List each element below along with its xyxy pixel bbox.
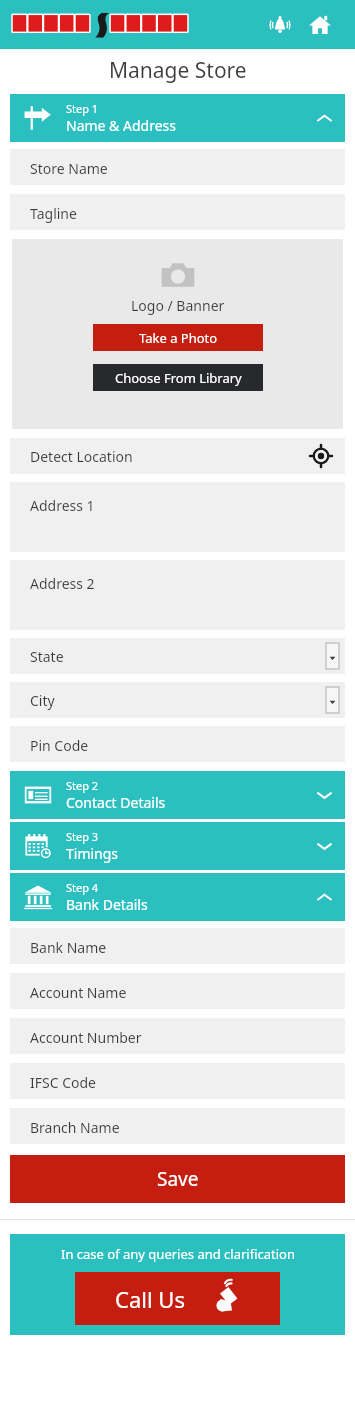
staticText: Tagline (30, 204, 77, 223)
staticText: Step 2 (66, 778, 99, 793)
staticText: Store Name (30, 159, 108, 178)
button[interactable]: Tagline (10, 194, 345, 230)
button[interactable]: Call Us (75, 1272, 280, 1325)
button[interactable]: Detect Location (10, 438, 345, 474)
button[interactable]: Step 4 (10, 873, 345, 921)
staticText: Call Us (115, 1284, 185, 1314)
staticText: Logo / Banner (131, 296, 225, 315)
staticText: State (30, 647, 64, 666)
staticText: Manage Store (109, 56, 247, 85)
staticText: Step 1 (66, 101, 99, 116)
button[interactable]: Step 1 (10, 94, 345, 142)
button[interactable]: Store Name (10, 149, 345, 185)
staticText: In case of any queries and clarification (61, 1245, 295, 1263)
button[interactable]: Take a Photo (93, 324, 263, 351)
button[interactable]: IFSC Code (10, 1063, 345, 1099)
staticText: Take a Photo (139, 329, 218, 347)
button[interactable]: Bank Name (10, 928, 345, 964)
button[interactable]: Choose From Library (93, 364, 263, 391)
button[interactable]: Notifications (263, 8, 297, 42)
staticText: Contact Details (66, 793, 166, 812)
staticText: Step 3 (66, 829, 99, 844)
button[interactable]: Step 2 (10, 771, 345, 819)
button[interactable]: City (10, 682, 345, 718)
button[interactable]: Step 3 (10, 822, 345, 870)
button[interactable]: Account Number (10, 1018, 345, 1054)
button[interactable]: Save (10, 1155, 345, 1203)
staticText: IFSC Code (30, 1073, 97, 1092)
staticText: Bank Name (30, 938, 107, 957)
staticText: Address 1 (30, 496, 95, 515)
button[interactable]: Pin Code (10, 726, 345, 762)
staticText: Pin Code (30, 736, 89, 755)
staticText: Branch Name (30, 1118, 120, 1137)
staticText: Bank Details (66, 895, 148, 914)
button[interactable]: State (10, 638, 345, 674)
staticText: City (30, 691, 55, 710)
button[interactable]: Home (303, 8, 337, 42)
button[interactable]: Address 2 (10, 560, 345, 630)
button[interactable]: Branch Name (10, 1108, 345, 1144)
staticText: Account Number (30, 1028, 142, 1047)
button[interactable]: Address 1 (10, 482, 345, 552)
staticText: Step 4 (66, 880, 99, 895)
staticText: Save (157, 1166, 199, 1192)
staticText: Name & Address (66, 116, 176, 135)
staticText: Detect Location (30, 447, 133, 466)
button[interactable]: NeareStores logo (10, 10, 195, 40)
staticText: Choose From Library (115, 369, 242, 387)
staticText: Timings (66, 844, 119, 863)
staticText: Address 2 (30, 574, 95, 593)
button[interactable]: Account Name (10, 973, 345, 1009)
staticText: Account Name (30, 983, 127, 1002)
